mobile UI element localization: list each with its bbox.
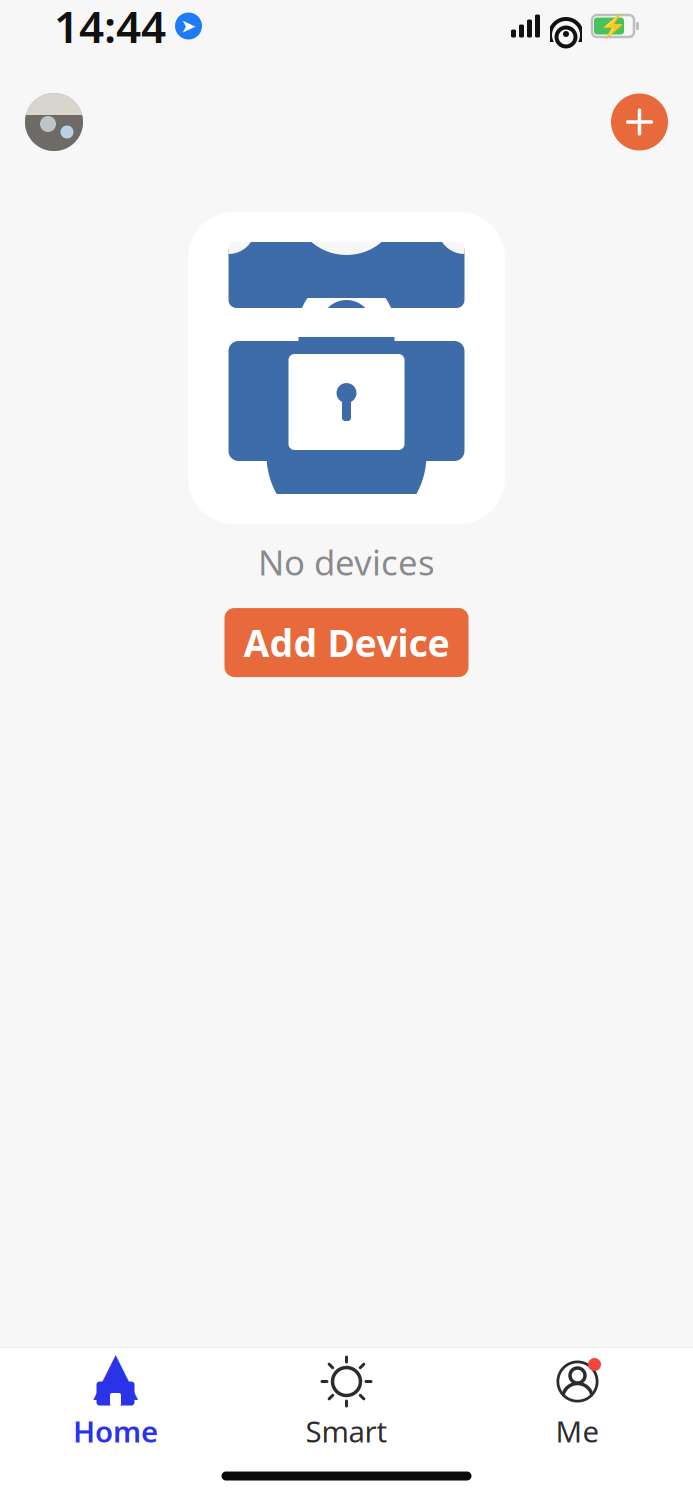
button[interactable]: ▲: [0, 1353, 231, 1447]
staticText: ▲: [93, 1339, 138, 1406]
staticText: Home: [73, 1411, 158, 1450]
staticText: ⚡: [599, 13, 627, 39]
staticText: ➤: [180, 15, 196, 37]
staticText: Smart: [305, 1411, 387, 1450]
button[interactable]: Add: [611, 93, 668, 150]
staticText: Add Device: [243, 618, 449, 667]
button[interactable]: Smart: [231, 1353, 462, 1447]
button[interactable]: Add Device: [224, 608, 468, 677]
button[interactable]: Profile: [25, 93, 83, 151]
staticText: No devices: [258, 539, 435, 585]
staticText: 14:44: [54, 0, 166, 55]
staticText: Me: [555, 1411, 599, 1450]
button[interactable]: Me: [462, 1353, 693, 1447]
